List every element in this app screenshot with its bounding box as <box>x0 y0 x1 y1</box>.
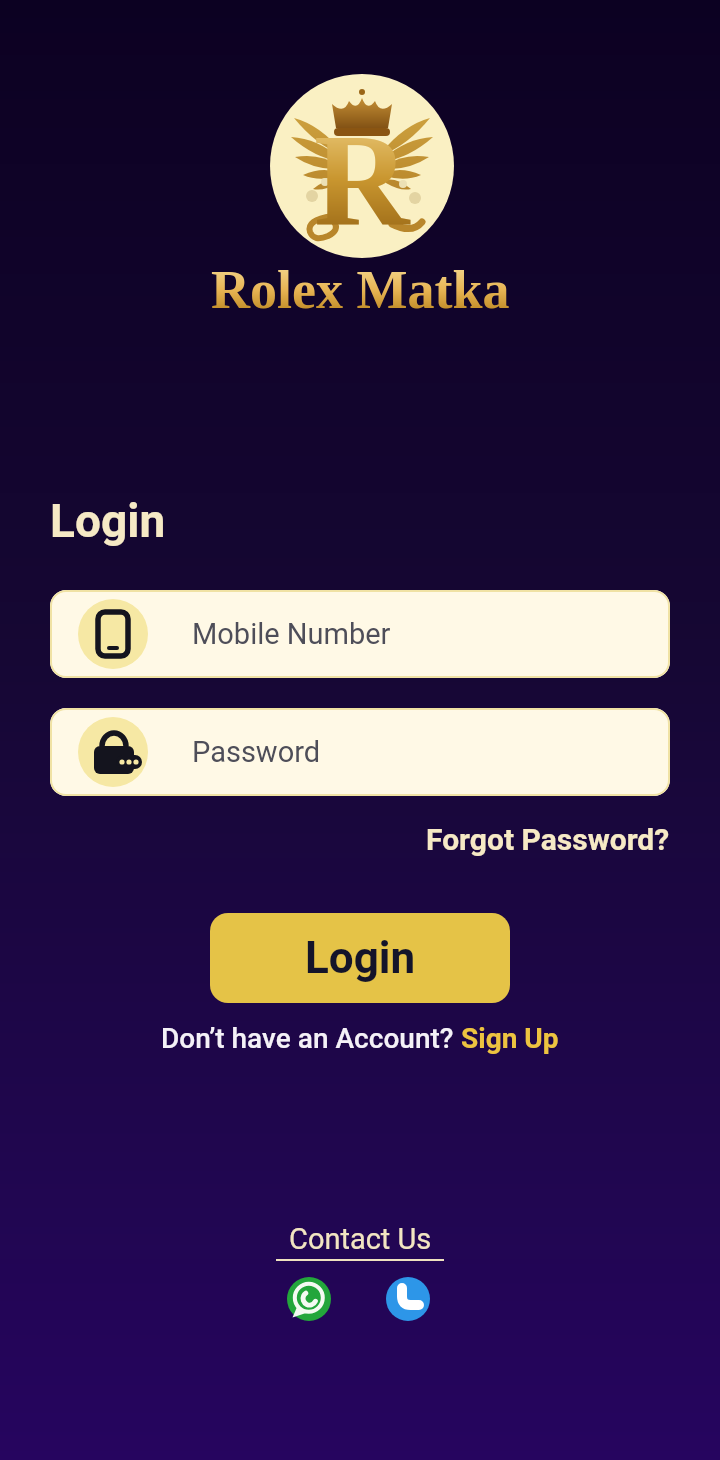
staticText: Login <box>50 494 166 548</box>
button[interactable]: Login <box>210 913 510 1003</box>
staticText: Rolex Matka <box>211 260 510 320</box>
staticText: Password <box>192 735 321 769</box>
button[interactable]: Contact Us <box>289 1222 432 1256</box>
button[interactable]: Forgot Password? <box>426 822 670 857</box>
button[interactable] <box>287 1277 331 1321</box>
button[interactable]: Password <box>50 708 670 796</box>
staticText: Mobile Number <box>192 617 391 651</box>
staticText: R <box>314 106 410 252</box>
staticText: Login <box>305 932 416 984</box>
button[interactable] <box>386 1277 430 1321</box>
button[interactable]: Mobile Number <box>50 590 670 678</box>
staticText: Don’t have an Account? <box>161 1022 461 1055</box>
button[interactable]: Sign Up <box>461 1022 559 1055</box>
